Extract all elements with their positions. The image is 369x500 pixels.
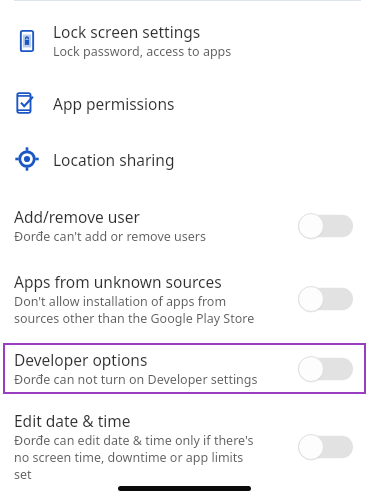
other: Location sharing bbox=[14, 146, 40, 172]
staticText: Location sharing bbox=[53, 149, 175, 170]
staticText: Apps from unknown sources bbox=[14, 271, 222, 292]
staticText: Lock password, access to apps bbox=[53, 43, 232, 60]
staticText: Đorđe can edit date & time only if there… bbox=[14, 432, 254, 449]
other: App permissions bbox=[14, 90, 40, 116]
staticText: App permissions bbox=[53, 93, 175, 114]
staticText: Developer options bbox=[14, 349, 148, 370]
staticText: no screen time, downtime or app limits bbox=[14, 449, 244, 466]
button[interactable]: Apps from unknown sources bbox=[0, 265, 369, 333]
button[interactable]: Edit date & time bbox=[0, 404, 369, 489]
button[interactable]: Toggle off bbox=[298, 286, 353, 312]
staticText: Don't allow installation of apps from bbox=[14, 293, 227, 310]
button[interactable]: Toggle off bbox=[298, 434, 353, 460]
staticText: Edit date & time bbox=[14, 410, 131, 431]
button[interactable]: Location sharing bbox=[0, 142, 369, 176]
staticText: Đorđe can not turn on Developer settings bbox=[14, 371, 258, 388]
other: Lock screen settings bbox=[14, 28, 40, 54]
button[interactable]: Developer options bbox=[3, 343, 366, 394]
staticText: sources other than the Google Play Store bbox=[14, 310, 255, 327]
staticText: Lock screen settings bbox=[53, 21, 201, 42]
button[interactable]: App permissions bbox=[0, 86, 369, 120]
button[interactable]: Toggle off bbox=[298, 213, 353, 239]
button[interactable]: Toggle off bbox=[298, 356, 353, 382]
staticText: Add/remove user bbox=[14, 206, 140, 227]
button[interactable]: Lock screen settings bbox=[0, 17, 369, 64]
button[interactable]: Add/remove user bbox=[0, 200, 369, 251]
staticText: Đorđe can't add or remove users bbox=[14, 228, 206, 245]
staticText: set bbox=[14, 466, 32, 483]
